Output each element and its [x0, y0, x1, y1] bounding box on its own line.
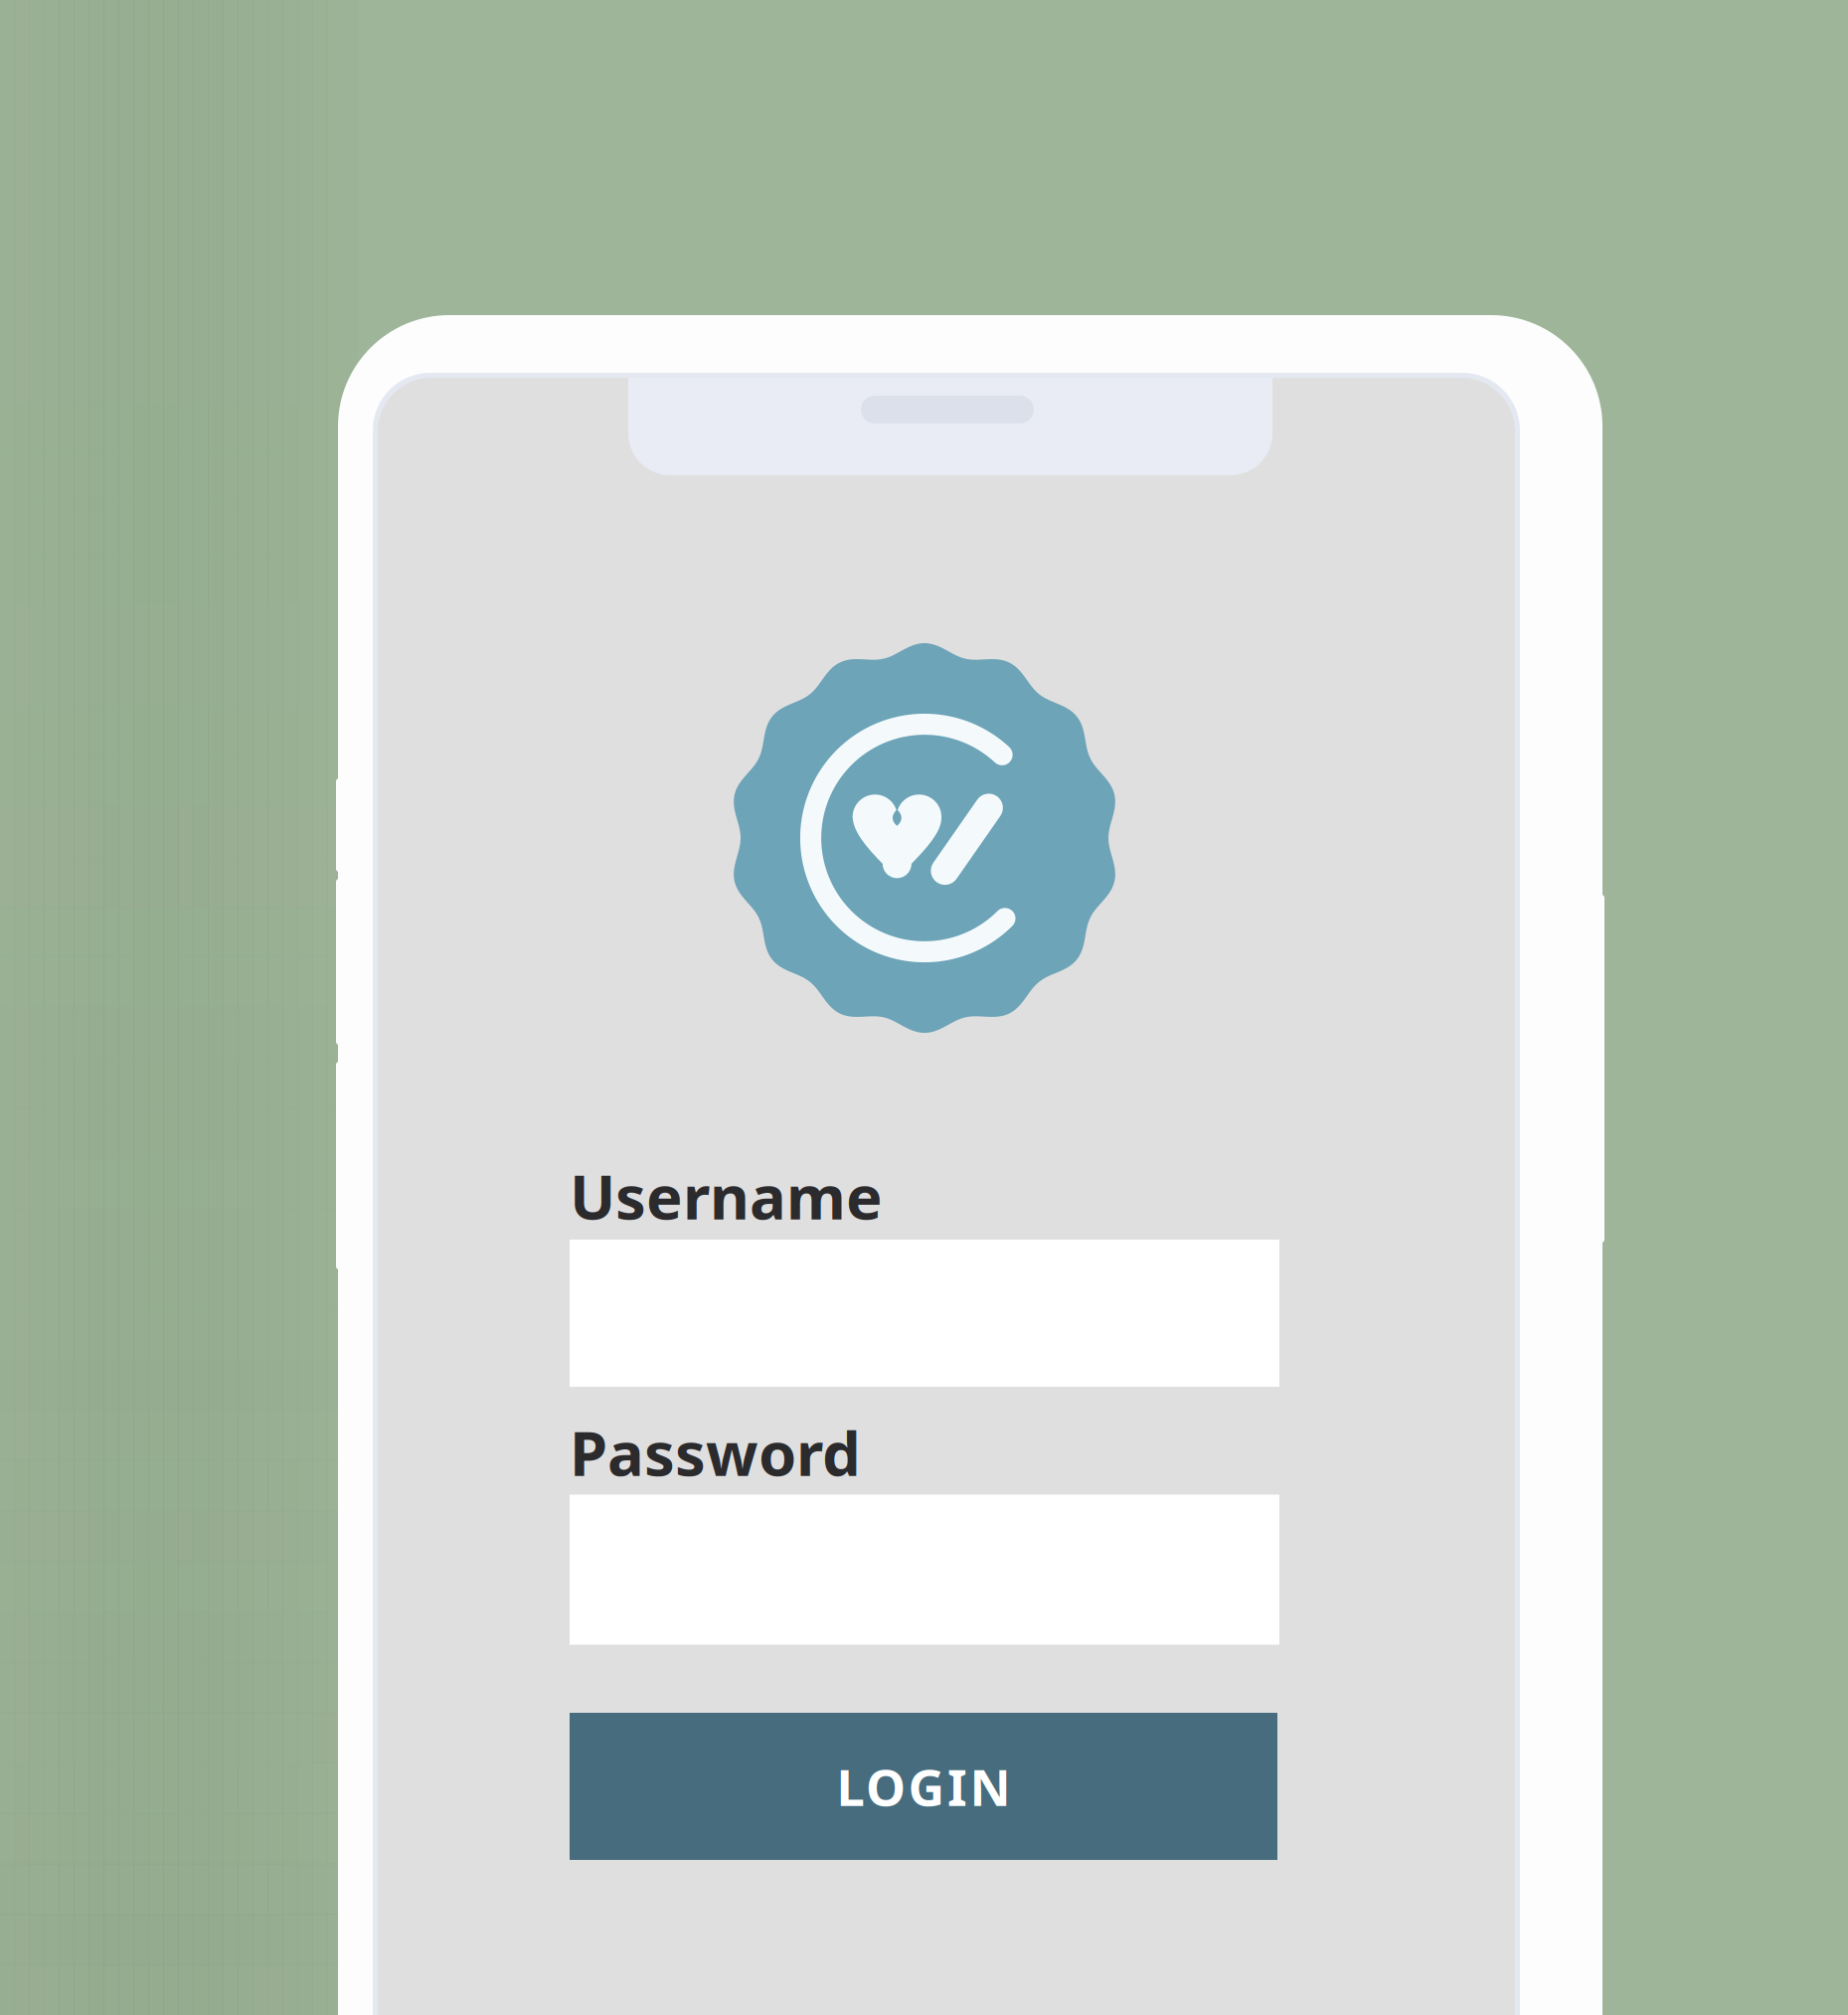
staticText: Username: [570, 1155, 883, 1236]
button[interactable]: LOGIN: [570, 1713, 1277, 1860]
staticText: Password: [570, 1412, 861, 1493]
staticText: LOGIN: [837, 1753, 1010, 1820]
